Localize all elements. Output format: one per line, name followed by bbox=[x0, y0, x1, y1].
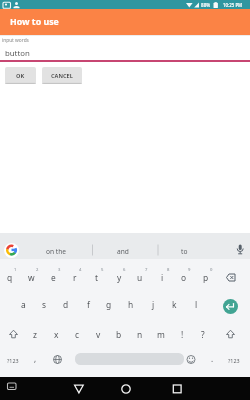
button[interactable]: m bbox=[151, 326, 171, 342]
button[interactable]: to bbox=[169, 245, 199, 257]
button[interactable]: k bbox=[164, 296, 184, 312]
staticText: How to use bbox=[10, 16, 59, 28]
button[interactable] bbox=[4, 243, 19, 258]
staticText: ! bbox=[181, 329, 184, 340]
button[interactable]: . bbox=[205, 351, 219, 365]
button[interactable] bbox=[54, 377, 94, 400]
button[interactable]: w bbox=[21, 269, 41, 285]
staticText: z bbox=[33, 329, 37, 340]
button[interactable]: CANCEL bbox=[42, 67, 82, 84]
staticText: 2 bbox=[36, 267, 39, 273]
staticText: a bbox=[21, 299, 26, 310]
staticText: CANCEL bbox=[51, 72, 73, 80]
button[interactable]: q bbox=[0, 269, 20, 285]
staticText: ? bbox=[201, 329, 205, 340]
staticText: 3 bbox=[58, 267, 61, 273]
button[interactable]: OK bbox=[5, 67, 36, 84]
staticText: y bbox=[117, 272, 122, 283]
staticText: s bbox=[42, 299, 47, 310]
staticText: to bbox=[181, 247, 188, 256]
staticText: e bbox=[51, 272, 56, 283]
button[interactable]: p bbox=[196, 269, 216, 285]
button[interactable]: v bbox=[88, 326, 108, 342]
button[interactable]: e bbox=[43, 269, 63, 285]
staticText: o bbox=[181, 272, 187, 283]
staticText: ?123 bbox=[7, 357, 19, 364]
button[interactable]: g bbox=[99, 296, 119, 312]
staticText: q bbox=[7, 272, 13, 283]
button[interactable]: on the bbox=[36, 245, 76, 257]
staticText: x bbox=[54, 329, 59, 340]
button[interactable] bbox=[223, 299, 238, 314]
button[interactable]: i bbox=[152, 269, 172, 285]
staticText: n bbox=[137, 329, 143, 340]
button[interactable]: t bbox=[87, 269, 107, 285]
staticText: OK bbox=[16, 72, 25, 80]
button[interactable] bbox=[75, 353, 184, 365]
button[interactable]: d bbox=[56, 296, 76, 312]
staticText: f bbox=[87, 299, 90, 310]
staticText: r bbox=[73, 272, 77, 283]
staticText: 8 bbox=[167, 267, 170, 273]
button[interactable]: h bbox=[121, 296, 141, 312]
staticText: t bbox=[95, 272, 99, 283]
staticText: on the bbox=[46, 247, 66, 256]
button[interactable]: a bbox=[13, 296, 33, 312]
button[interactable]: n bbox=[130, 326, 150, 342]
button[interactable]: l bbox=[186, 296, 206, 312]
staticText: b bbox=[116, 329, 122, 340]
staticText: k bbox=[172, 299, 177, 310]
staticText: , bbox=[34, 353, 37, 364]
staticText: 5 bbox=[101, 267, 104, 273]
button[interactable]: o bbox=[174, 269, 194, 285]
staticText: 4 bbox=[79, 267, 82, 273]
staticText: 88% bbox=[201, 2, 211, 8]
button[interactable]: y bbox=[109, 269, 129, 285]
staticText: 6 bbox=[123, 267, 126, 273]
button[interactable]: ?123 bbox=[223, 353, 245, 367]
button[interactable]: button bbox=[0, 45, 250, 60]
button[interactable]: r bbox=[65, 269, 85, 285]
staticText: ?123 bbox=[228, 357, 240, 364]
button[interactable]: j bbox=[143, 296, 163, 312]
staticText: m bbox=[157, 329, 165, 340]
staticText: w bbox=[28, 272, 35, 283]
staticText: 9 bbox=[188, 267, 191, 273]
button[interactable]: ?123 bbox=[2, 353, 24, 367]
staticText: u bbox=[137, 272, 143, 283]
staticText: and bbox=[117, 247, 129, 256]
staticText: j bbox=[152, 299, 155, 310]
button[interactable]: c bbox=[67, 326, 87, 342]
staticText: l bbox=[195, 299, 198, 310]
button[interactable]: ? bbox=[193, 326, 213, 342]
staticText: v bbox=[96, 329, 101, 340]
staticText: 7 bbox=[145, 267, 148, 273]
staticText: 1 bbox=[14, 267, 17, 273]
staticText: input words bbox=[2, 37, 29, 44]
button[interactable]: x bbox=[46, 326, 66, 342]
button[interactable]: ! bbox=[172, 326, 192, 342]
staticText: d bbox=[63, 299, 69, 310]
staticText: 10:25 PM bbox=[223, 2, 243, 8]
staticText: c bbox=[75, 329, 80, 340]
staticText: g bbox=[106, 299, 112, 310]
button[interactable] bbox=[156, 377, 196, 400]
button[interactable]: and bbox=[108, 245, 138, 257]
staticText: button bbox=[5, 48, 30, 59]
button[interactable]: b bbox=[109, 326, 129, 342]
button[interactable]: s bbox=[34, 296, 54, 312]
staticText: . bbox=[211, 353, 214, 364]
button[interactable]: u bbox=[130, 269, 150, 285]
staticText: h bbox=[128, 299, 134, 310]
button[interactable]: f bbox=[78, 296, 98, 312]
button[interactable]: , bbox=[28, 351, 42, 365]
staticText: 0 bbox=[210, 267, 213, 273]
staticText: i bbox=[161, 272, 164, 283]
button[interactable] bbox=[105, 377, 145, 400]
staticText: p bbox=[203, 272, 209, 283]
button[interactable]: z bbox=[25, 326, 45, 342]
